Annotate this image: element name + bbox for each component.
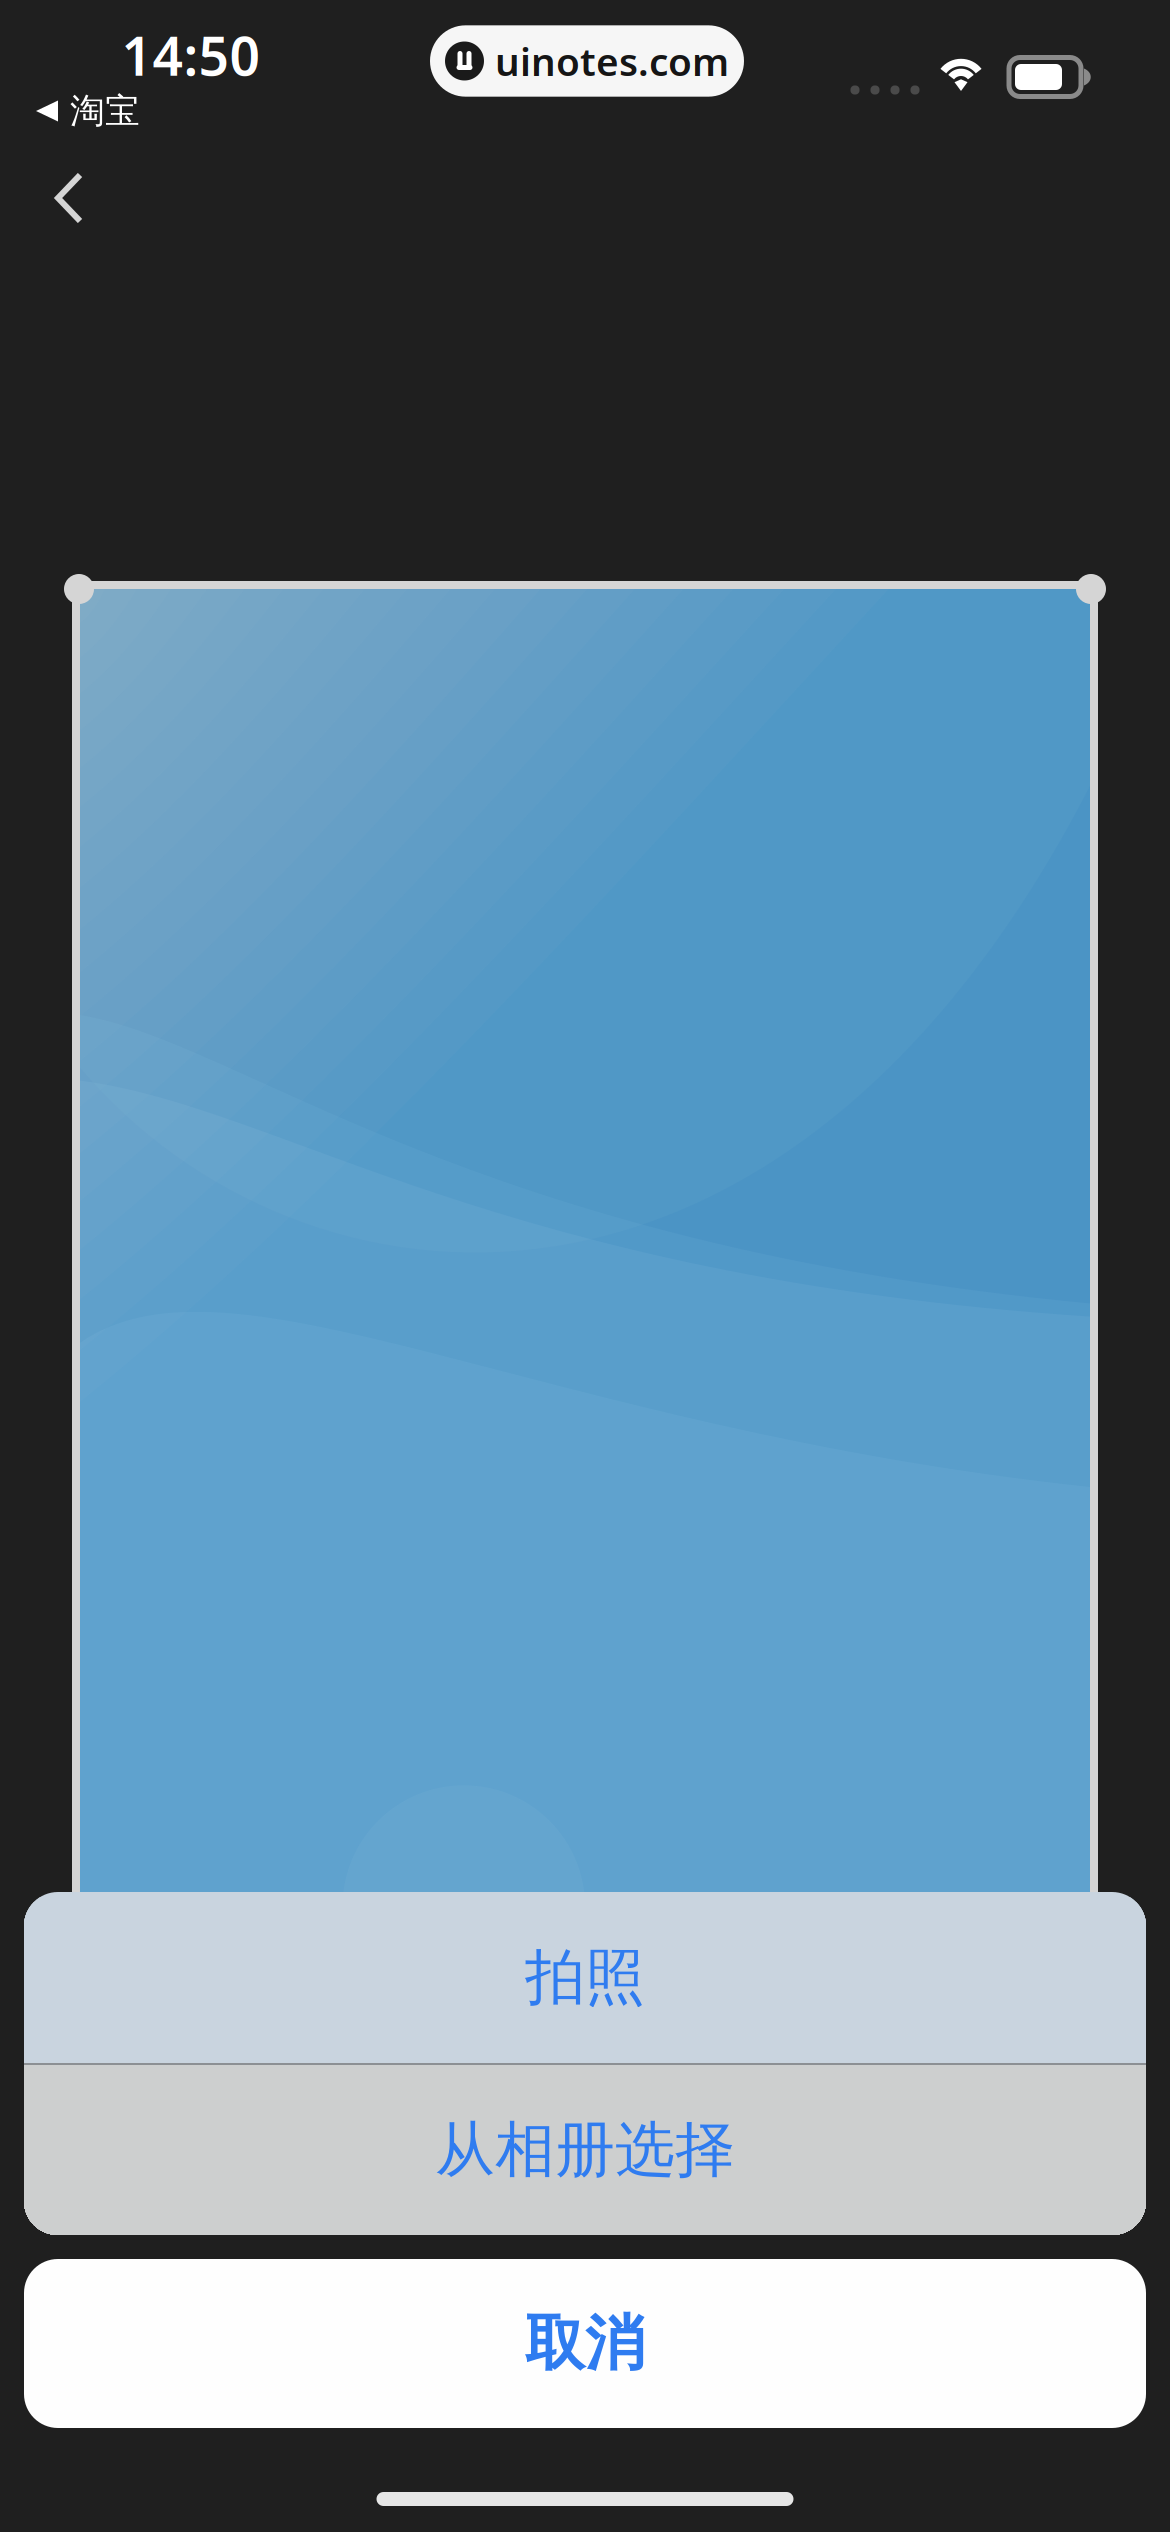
button[interactable]: Top right crop handle (1056, 554, 1126, 624)
button[interactable]: 取消 (24, 2259, 1146, 2428)
staticText: uinotes.com (495, 35, 729, 87)
button[interactable]: 拍照 (24, 1892, 1146, 2063)
button[interactable]: 淘宝 (26, 84, 150, 138)
staticText: 淘宝 (70, 90, 140, 132)
button[interactable]: 从相册选择 (24, 2065, 1146, 2235)
staticText: 取消 (525, 2307, 645, 2380)
button[interactable]: Back (26, 143, 112, 253)
staticText: 从相册选择 (435, 2113, 735, 2187)
staticText: 拍照 (525, 1941, 645, 2014)
staticText: 14:50 (121, 20, 260, 90)
button[interactable]: Top left crop handle (44, 554, 114, 624)
